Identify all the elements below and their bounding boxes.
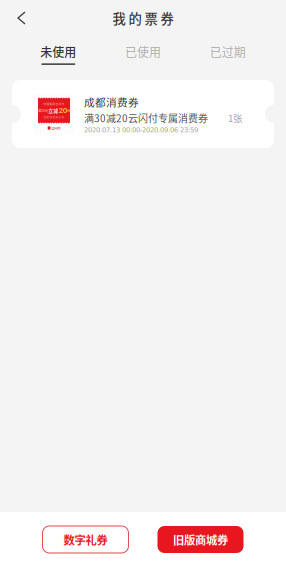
button[interactable]: 数字礼券: [42, 526, 128, 553]
staticText: 满30减20云闪付专属消费券: [84, 111, 208, 125]
button[interactable]: 已使用: [101, 39, 185, 69]
staticText: 元: [67, 108, 70, 113]
button[interactable]: 中国银联云闪付: [12, 80, 274, 148]
staticText: 云闪付: [51, 125, 60, 130]
staticText: 2020.07.13 00:00-2020.09.06 23:59: [84, 126, 198, 134]
staticText: 已使用: [125, 43, 161, 60]
staticText: 20: [59, 106, 67, 115]
staticText: 成都消费券专享: [43, 115, 64, 119]
button[interactable]: 已过期: [185, 39, 270, 69]
button[interactable]: 未使用: [16, 39, 101, 69]
button[interactable]: 旧版商城券: [157, 526, 243, 553]
staticText: 满30元: [38, 108, 48, 113]
staticText: 已过期: [210, 43, 246, 60]
staticText: 未使用: [40, 43, 76, 60]
staticText: 立减: [48, 107, 58, 114]
staticText: 旧版商城券: [173, 531, 228, 548]
staticText: 数字礼券: [63, 531, 107, 548]
staticText: 中国银联云闪付: [43, 102, 64, 106]
staticText: 1张: [228, 111, 243, 125]
button[interactable]: Back: [0, 1, 43, 35]
staticText: 成都消费券: [84, 94, 139, 110]
staticText: 我 的 票 券: [112, 8, 173, 28]
